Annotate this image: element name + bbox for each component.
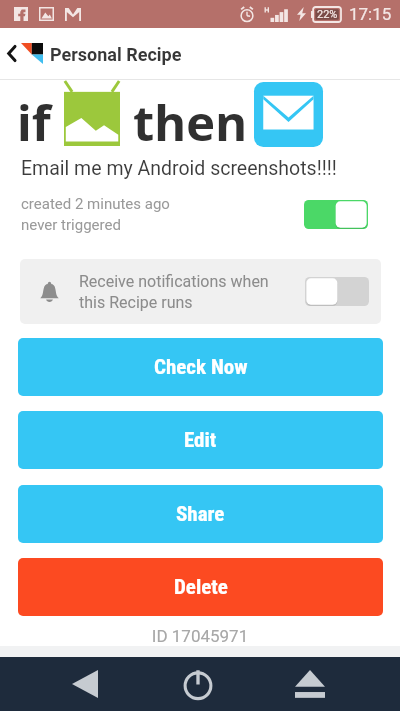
staticText: ID 17045971 <box>0 626 400 646</box>
staticText: if <box>17 89 51 156</box>
staticText: Email me my Android screenshots!!!! <box>21 157 337 180</box>
staticText: this Recipe runs <box>79 293 193 312</box>
button[interactable]: Notifications off <box>305 277 369 306</box>
staticText: created 2 minutes ago <box>21 195 170 213</box>
button[interactable]: Back <box>29 657 141 711</box>
button[interactable]: Receive notifications when <box>20 259 381 324</box>
button[interactable]: Check Now <box>18 338 383 396</box>
button[interactable]: Edit <box>18 411 383 469</box>
button[interactable]: Recent apps <box>254 657 366 711</box>
staticText: Edit <box>184 428 217 453</box>
staticText: Check Now <box>154 355 248 380</box>
staticText: Share <box>176 502 225 527</box>
button[interactable]: Home <box>142 657 254 711</box>
button[interactable]: Share <box>18 485 383 543</box>
staticText: 17:15 <box>349 4 392 24</box>
button[interactable]: Delete <box>18 558 383 616</box>
staticText: then <box>133 89 248 156</box>
staticText: Receive notifications when <box>79 272 269 291</box>
staticText: Personal Recipe <box>50 44 182 65</box>
button[interactable]: Recipe enabled <box>304 200 368 229</box>
button[interactable]: Navigate up <box>0 28 23 79</box>
staticText: 22% <box>317 8 338 21</box>
staticText: Delete <box>174 575 228 600</box>
staticText: never triggered <box>21 216 121 234</box>
